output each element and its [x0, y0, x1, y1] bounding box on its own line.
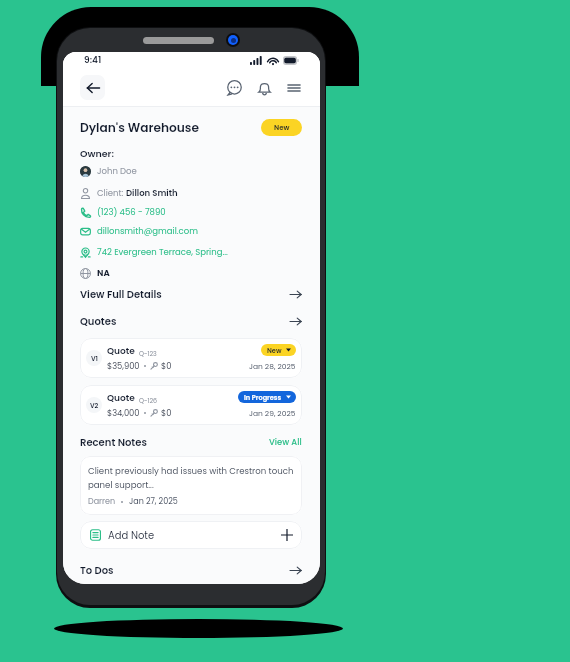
staticText: View All [269, 436, 302, 448]
staticText: 742 Evergreen Terrace, Spring... [97, 246, 228, 258]
staticText: Add Note [108, 528, 155, 542]
staticText: Jan 28, 2025 [249, 361, 296, 371]
staticText: (123) 456 - 7890 [97, 206, 166, 218]
staticText: $0 [161, 360, 172, 372]
button[interactable]: Quotes [80, 311, 302, 331]
staticText: In Progress [244, 393, 282, 402]
button[interactable]: New [261, 119, 302, 136]
staticText: New [274, 123, 290, 133]
staticText: To Dos [80, 563, 114, 577]
staticText: View Full Details [80, 287, 162, 301]
staticText: John Doe [97, 165, 137, 177]
button[interactable]: Client previously had issues with Crestr… [80, 456, 302, 515]
staticText: Recent Notes [80, 435, 147, 449]
staticText: dillonsmith@gmail.com [97, 225, 198, 237]
button[interactable]: To Dos [80, 560, 302, 580]
staticText: Dillon Smith [126, 187, 178, 199]
staticText: New [267, 346, 282, 355]
button[interactable]: Messages [222, 76, 246, 100]
staticText: $35,900 [107, 360, 140, 372]
staticText: V1 [91, 354, 98, 363]
staticText: Jan 29, 2025 [249, 408, 296, 418]
button[interactable]: Notifications [252, 76, 276, 100]
staticText: $34,000 [107, 407, 140, 419]
staticText: Quotes [80, 314, 117, 328]
staticText: Quote [107, 392, 135, 405]
staticText: Jan 27, 2025 [129, 496, 178, 507]
staticText: Client: [97, 187, 126, 199]
staticText: Owner: [80, 147, 114, 160]
staticText: Dylan's Warehouse [80, 119, 199, 136]
staticText: V2 [90, 401, 99, 410]
button[interactable]: Add Note [80, 521, 302, 549]
button[interactable]: Menu [282, 76, 306, 100]
staticText: Darren [88, 496, 116, 507]
staticText: Quote [107, 345, 135, 358]
staticText: Q-126 [139, 396, 158, 405]
staticText: Client previously had issues with Crestr… [88, 465, 296, 491]
button[interactable]: View All [269, 436, 302, 448]
staticText: $0 [161, 407, 172, 419]
button[interactable]: V1 [80, 338, 302, 378]
staticText: NA [97, 267, 110, 279]
button[interactable]: V2 [80, 385, 302, 425]
staticText: Q-123 [139, 349, 157, 358]
button[interactable]: Back [80, 75, 105, 100]
staticText: 9:41 [84, 54, 102, 67]
button[interactable]: View Full Details [80, 284, 302, 304]
